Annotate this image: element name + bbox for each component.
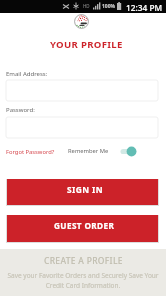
staticText: SIGN IN [67,184,103,195]
button[interactable]: Forgot Password? [6,148,55,156]
staticText: Remember Me [68,147,109,155]
staticText: Save your Favorite Orders and Securely S… [3,271,163,289]
staticText: CREATE A PROFILE [44,255,123,267]
staticText: HD [83,3,90,9]
staticText: Email Address: [6,70,48,78]
staticText: Forgot Password? [6,148,55,156]
staticText: Password: [6,106,35,114]
staticText: YOUR PROFILE [50,38,123,51]
staticText: 12:34 PM [126,2,163,13]
button[interactable]: GUEST ORDER [7,215,158,242]
staticText: GUEST ORDER [54,220,115,231]
staticText: 100% [102,3,116,10]
button[interactable]: Remember Me [120,146,137,157]
button[interactable]: SIGN IN [7,179,158,205]
button[interactable]: CREATE A PROFILE [44,255,123,267]
